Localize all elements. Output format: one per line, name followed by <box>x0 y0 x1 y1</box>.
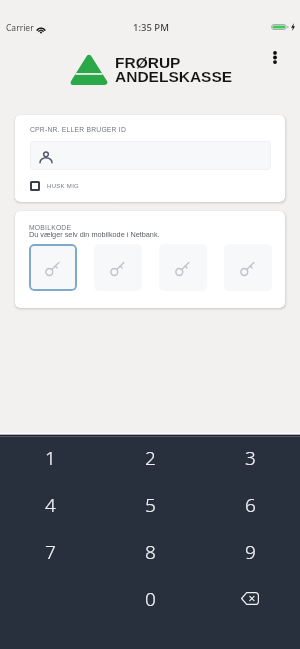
button[interactable]: Mobile code digit <box>224 244 272 291</box>
button[interactable]: 4 <box>0 481 100 528</box>
button[interactable]: 1 <box>0 435 100 481</box>
staticText: 1:35 PM <box>133 21 169 34</box>
staticText: HUSK MIG <box>47 183 80 190</box>
staticText: 6 <box>245 492 256 518</box>
staticText: FRØRUP ANDELSKASSE <box>115 54 233 85</box>
button[interactable]: Mobile code digit <box>159 244 207 291</box>
button[interactable]: 0 <box>100 575 200 622</box>
button[interactable]: HUSK MIG <box>30 181 80 191</box>
button[interactable]: 9 <box>200 528 300 575</box>
button[interactable]: CPR or user ID input <box>30 141 271 170</box>
button[interactable]: 8 <box>100 528 200 575</box>
button[interactable]: 5 <box>100 481 200 528</box>
button[interactable]: Delete <box>200 575 300 622</box>
staticText: Carrier <box>6 22 34 34</box>
staticText: MOBILKODE <box>29 224 72 232</box>
staticText: 3 <box>245 445 256 471</box>
button[interactable]: 3 <box>200 435 300 481</box>
button[interactable]: Mobile code digit <box>29 244 77 291</box>
staticText: 2 <box>145 445 156 471</box>
button[interactable]: Mobile code digit <box>94 244 142 291</box>
staticText: 1 <box>45 445 56 471</box>
staticText: CPR-NR. ELLER BRUGER ID <box>30 126 126 134</box>
button[interactable]: More options <box>264 46 286 68</box>
staticText: 4 <box>45 492 56 518</box>
staticText: 5 <box>145 492 156 518</box>
staticText: Du vælger selv din mobilkode i Netbank. <box>29 230 160 238</box>
staticText: 8 <box>145 539 156 565</box>
staticText: 7 <box>45 539 56 565</box>
button[interactable]: 7 <box>0 528 100 575</box>
button[interactable]: 6 <box>200 481 300 528</box>
button[interactable]: 2 <box>100 435 200 481</box>
staticText: 9 <box>245 539 256 565</box>
staticText: 0 <box>145 586 156 612</box>
